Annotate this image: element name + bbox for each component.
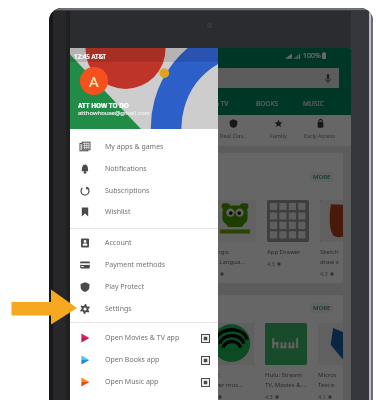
- button[interactable]: ify:: [212, 323, 265, 400]
- staticText: Wishlist: [105, 207, 131, 217]
- staticText: 4.3: [265, 393, 273, 400]
- button[interactable]: BOOKS: [239, 92, 295, 114]
- button[interactable]: Wishlist: [70, 201, 218, 223]
- staticText: draw s: [320, 258, 339, 266]
- button[interactable]: Top charts: [123, 119, 167, 139]
- button[interactable]: Open Music app: [70, 371, 218, 393]
- button[interactable]: My apps & games: [70, 136, 218, 158]
- staticText: MORE: [313, 304, 331, 312]
- staticText: Text e: [318, 381, 335, 389]
- button[interactable]: Sketch: [320, 200, 343, 277]
- staticText: Open Music app: [105, 377, 159, 387]
- button[interactable]: Open Movies & TV app: [70, 327, 218, 349]
- staticText: 12:45 AT&T: [74, 52, 107, 60]
- staticText: Settings: [105, 304, 132, 314]
- staticText: 100%: [303, 51, 321, 60]
- staticText: Play Protect: [105, 282, 144, 292]
- staticText: APPS: [147, 99, 163, 108]
- staticText: over mus...: [212, 381, 243, 389]
- staticText: ify:: [212, 371, 221, 379]
- button[interactable]: A: [80, 67, 108, 95]
- staticText: Account: [105, 238, 132, 248]
- button[interactable]: MOVIES & TV: [180, 92, 236, 114]
- staticText: ATT HOW TO DO: [78, 101, 129, 110]
- staticText: Open Movies & TV app: [105, 333, 180, 343]
- staticText: Real Clas..: [220, 132, 247, 139]
- staticText: 4.3: [267, 260, 275, 267]
- staticText: A: [89, 71, 99, 91]
- staticText: Open Books app: [105, 355, 160, 365]
- staticText: Family: [270, 132, 287, 139]
- button[interactable]: APPS: [127, 92, 183, 114]
- button[interactable]: For you: [79, 119, 123, 139]
- button[interactable]: App Drawer: [267, 200, 320, 267]
- button[interactable]: MORE: [310, 303, 333, 313]
- button[interactable]: MUSIC: [285, 92, 341, 114]
- staticText: atthowhouse@gmail.com: [78, 109, 150, 117]
- button[interactable]: Subscriptions: [70, 180, 218, 202]
- button[interactable]: Micros: [318, 323, 343, 400]
- button[interactable]: Account: [70, 232, 218, 254]
- staticText: Notifications: [105, 164, 147, 174]
- staticText: MOVIES & TV: [188, 99, 229, 108]
- button[interactable]: Open Books app: [70, 349, 218, 371]
- staticText: MORE: [313, 173, 331, 181]
- button[interactable]: Payment methods: [70, 254, 218, 276]
- staticText: GAMES: [89, 99, 112, 108]
- button[interactable]: Real Clas..: [211, 119, 255, 139]
- staticText: 4.1: [318, 393, 326, 400]
- staticText: TV, Movies & ...: [265, 381, 307, 389]
- staticText: Micros: [318, 371, 337, 379]
- button[interactable]: Play Protect: [70, 276, 218, 298]
- button[interactable]: Early Access: [298, 119, 342, 139]
- staticText: App Drawer: [267, 248, 301, 256]
- button[interactable]: GAMES: [72, 92, 128, 114]
- staticText: 4.3: [320, 270, 328, 277]
- staticText: My apps & games: [105, 142, 164, 152]
- other: Open app: [201, 334, 210, 343]
- staticText: n Langua...: [214, 258, 246, 266]
- button[interactable]: MORE: [310, 172, 333, 182]
- other: Open app: [201, 378, 210, 387]
- button[interactable]: Family: [256, 119, 300, 139]
- button[interactable]: Notifications: [70, 158, 218, 180]
- staticText: Sketch: [320, 248, 339, 256]
- staticText: Hulu: Stream: [265, 371, 302, 379]
- button[interactable]: Settings: [70, 298, 218, 320]
- button[interactable]: Editors: [167, 119, 211, 139]
- staticText: BOOKS: [256, 99, 279, 108]
- staticText: Payment methods: [105, 260, 166, 270]
- button[interactable]: Hulu: Stream: [265, 323, 318, 400]
- staticText: MUSIC: [303, 99, 324, 108]
- staticText: Subscriptions: [105, 186, 150, 196]
- button[interactable]: lingo:: [214, 200, 267, 277]
- other: Open app: [201, 356, 210, 365]
- staticText: lingo:: [214, 248, 230, 256]
- staticText: Early Access: [304, 132, 336, 139]
